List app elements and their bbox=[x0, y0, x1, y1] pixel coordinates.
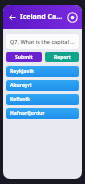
staticText: Akureyri bbox=[10, 82, 32, 89]
staticText: Q7. What is the capital of Iceland? bbox=[10, 38, 75, 45]
staticText: Iceland Capital an... bbox=[20, 12, 63, 22]
staticText: Report bbox=[54, 54, 71, 61]
staticText: Hafnarfjordur bbox=[10, 110, 45, 117]
button[interactable]: Q7. What is the capital of Iceland? bbox=[6, 34, 79, 49]
button[interactable]: Keflavik bbox=[6, 94, 79, 105]
staticText: Keflavik bbox=[10, 96, 31, 103]
button[interactable]: Hafnarfjordur bbox=[6, 108, 79, 119]
button[interactable]: Report bbox=[45, 52, 79, 62]
button[interactable]: Submit bbox=[6, 52, 42, 62]
staticText: Submit bbox=[15, 54, 33, 61]
button[interactable]: Akureyri bbox=[6, 80, 79, 91]
button[interactable]: Timer bbox=[65, 10, 79, 24]
button[interactable]: Back bbox=[6, 11, 18, 23]
staticText: Reykjavik bbox=[10, 68, 35, 75]
button[interactable]: Reykjavik bbox=[6, 66, 79, 77]
